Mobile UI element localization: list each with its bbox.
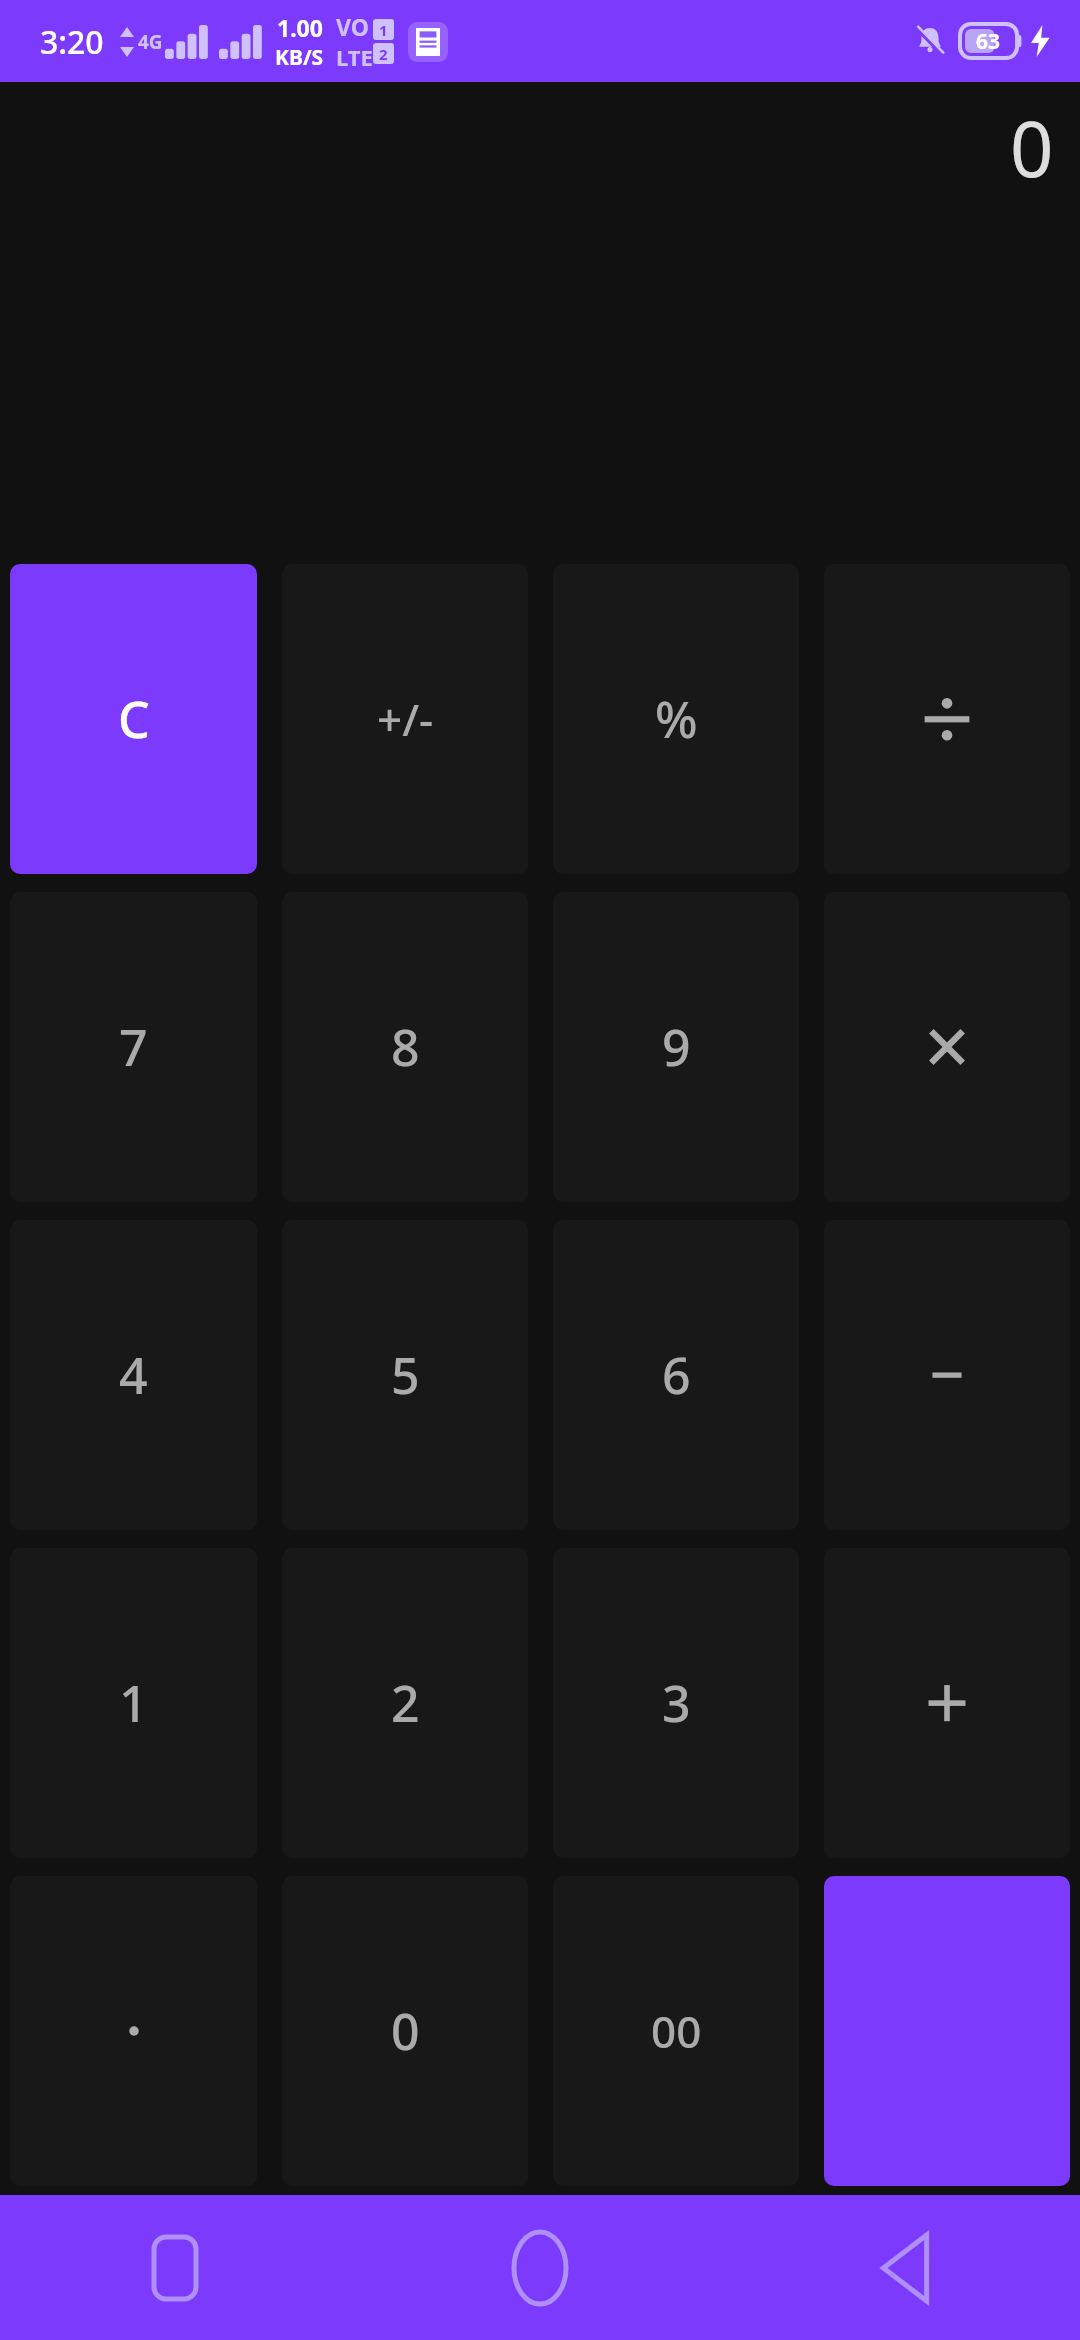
staticText: LTE: [336, 42, 373, 72]
staticText: 6: [662, 1341, 691, 1409]
button[interactable]: 6: [553, 1220, 799, 1530]
button[interactable]: C: [10, 564, 257, 874]
staticText: 4G: [138, 29, 163, 55]
button[interactable]: key: [824, 1876, 1070, 2186]
staticText: 1: [379, 20, 388, 40]
button[interactable]: 3: [553, 1548, 799, 1858]
staticText: %: [655, 685, 698, 753]
staticText: +/-: [377, 689, 434, 749]
staticText: 00: [651, 2001, 702, 2061]
button[interactable]: +/-: [282, 564, 528, 874]
button[interactable]: %: [553, 564, 799, 874]
staticText: 3: [662, 1669, 691, 1737]
button[interactable]: Home: [485, 2213, 595, 2323]
button[interactable]: key: [824, 1220, 1070, 1530]
staticText: KB/S: [275, 43, 324, 72]
staticText: 4: [119, 1341, 148, 1409]
staticText: 9: [662, 1013, 691, 1081]
button[interactable]: 7: [10, 892, 257, 1202]
button[interactable]: 2: [282, 1548, 528, 1858]
staticText: 2: [379, 44, 388, 64]
staticText: C: [118, 685, 150, 753]
staticText: 1: [119, 1669, 148, 1737]
staticText: 1.00: [277, 12, 323, 43]
staticText: 63: [976, 27, 1001, 56]
staticText: VO: [336, 11, 369, 42]
button[interactable]: 9: [553, 892, 799, 1202]
button[interactable]: 8: [282, 892, 528, 1202]
button[interactable]: 0: [282, 1876, 528, 2186]
staticText: 3:20: [40, 20, 104, 64]
button[interactable]: 1: [10, 1548, 257, 1858]
staticText: 0: [391, 1997, 420, 2065]
staticText: 2: [391, 1669, 420, 1737]
button[interactable]: Recent apps: [120, 2213, 230, 2323]
button[interactable]: 5: [282, 1220, 528, 1530]
staticText: 0: [1010, 96, 1054, 200]
button[interactable]: key: [824, 564, 1070, 874]
button[interactable]: 00: [553, 1876, 799, 2186]
button[interactable]: 4: [10, 1220, 257, 1530]
staticText: 8: [391, 1013, 420, 1081]
staticText: 5: [391, 1341, 420, 1409]
button[interactable]: key: [824, 1548, 1070, 1858]
staticText: 7: [119, 1013, 148, 1081]
button[interactable]: key: [10, 1876, 257, 2186]
button[interactable]: key: [824, 892, 1070, 1202]
button[interactable]: Back: [850, 2213, 960, 2323]
